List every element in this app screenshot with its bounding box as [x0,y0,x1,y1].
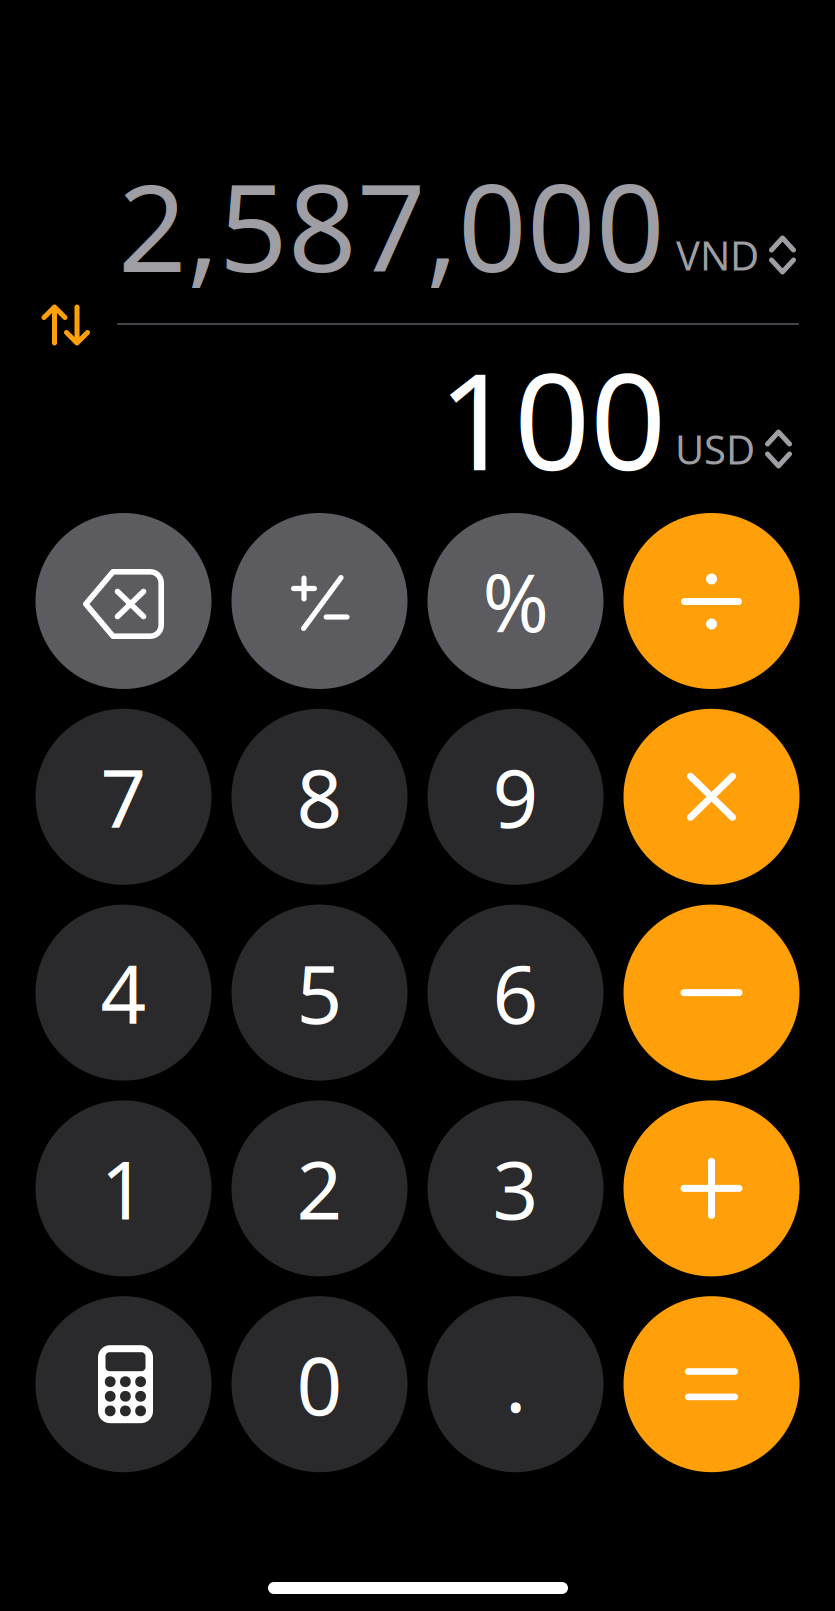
staticText: % [482,548,548,654]
staticText: 4 [100,939,146,1046]
button[interactable]: 2 [231,1100,407,1276]
staticText: 6 [492,939,538,1046]
button[interactable]: Delete [35,513,211,689]
button[interactable]: 3 [427,1100,603,1276]
button[interactable]: Convert to USD [672,414,795,483]
button[interactable]: Toggle sign [231,513,407,689]
staticText: VND [676,228,759,281]
button[interactable]: . [427,1296,603,1472]
staticText: 9 [492,744,538,850]
button[interactable]: Equals [623,1296,799,1472]
button[interactable]: Calculator [35,1296,211,1472]
button[interactable]: Add [623,1100,799,1276]
button[interactable]: 6 [427,905,603,1081]
button[interactable]: 2,587,000 [13,159,665,305]
staticText: . [505,1328,526,1434]
staticText: 1 [100,1135,146,1241]
staticText: 2,587,000 [118,146,665,305]
button[interactable]: Divide [623,513,799,689]
button[interactable]: 0 [231,1296,407,1472]
button[interactable]: % [427,513,603,689]
staticText: 0 [296,1331,342,1437]
button[interactable]: Swap currencies [24,285,108,365]
staticText: 5 [296,939,342,1046]
button[interactable]: 100 [14,347,666,507]
staticText: 2 [296,1135,342,1241]
button[interactable]: 1 [35,1100,211,1276]
button[interactable]: 5 [231,905,407,1081]
staticText: 7 [100,744,146,850]
button[interactable]: Subtract [623,905,799,1081]
button[interactable]: 4 [35,905,211,1081]
staticText: 3 [492,1135,538,1241]
button[interactable]: Convert from VND [673,220,799,289]
staticText: USD [675,422,755,475]
button[interactable]: 9 [427,709,603,885]
staticText: 8 [296,744,342,850]
staticText: 100 [438,330,666,507]
button[interactable]: 8 [231,709,407,885]
button[interactable]: 7 [35,709,211,885]
button[interactable]: Multiply [623,709,799,885]
